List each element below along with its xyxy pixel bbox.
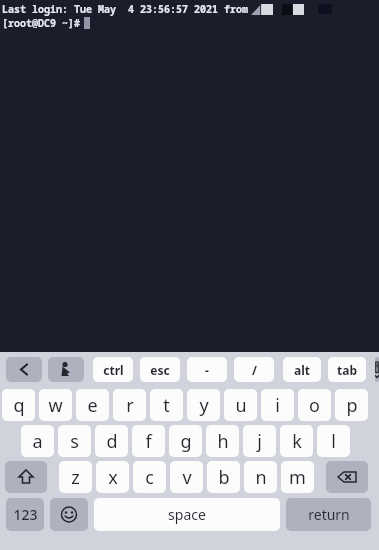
button[interactable]: q bbox=[2, 389, 35, 421]
staticText: / bbox=[252, 362, 257, 378]
staticText: m bbox=[289, 465, 306, 490]
button[interactable]: l bbox=[317, 425, 350, 457]
staticText: v bbox=[182, 465, 192, 490]
staticText: p bbox=[346, 393, 358, 418]
button[interactable]: Previous bbox=[6, 357, 42, 382]
button[interactable]: f bbox=[132, 425, 165, 457]
button[interactable]: - bbox=[187, 357, 227, 382]
staticText: [root@DC9 ~]# bbox=[2, 16, 80, 30]
button[interactable]: a bbox=[21, 425, 54, 457]
button[interactable]: v bbox=[170, 461, 203, 493]
staticText: f bbox=[145, 429, 152, 454]
button[interactable]: t bbox=[150, 389, 183, 421]
staticText: tab bbox=[337, 362, 357, 378]
staticText: - bbox=[205, 362, 209, 378]
button[interactable]: alt bbox=[283, 357, 321, 382]
button[interactable]: h bbox=[206, 425, 239, 457]
staticText: r bbox=[126, 393, 134, 418]
staticText: w bbox=[48, 393, 63, 418]
staticText: o bbox=[309, 393, 320, 418]
staticText: j bbox=[257, 429, 262, 454]
staticText: Last login: Tue May 4 23:56:57 2021 from bbox=[2, 2, 248, 16]
button[interactable]: z bbox=[59, 461, 92, 493]
staticText: y bbox=[199, 393, 209, 418]
staticText: alt bbox=[294, 362, 310, 378]
button[interactable]: j bbox=[243, 425, 276, 457]
staticText: g bbox=[180, 429, 192, 454]
button[interactable]: esc bbox=[140, 357, 180, 382]
staticText: a bbox=[32, 429, 43, 454]
button[interactable]: Emoji bbox=[50, 498, 88, 531]
staticText: e bbox=[87, 393, 98, 418]
button[interactable]: u bbox=[224, 389, 257, 421]
button[interactable]: x bbox=[96, 461, 129, 493]
button[interactable]: e bbox=[76, 389, 109, 421]
staticText: 123 bbox=[13, 505, 38, 524]
button[interactable]: k bbox=[280, 425, 313, 457]
button[interactable]: b bbox=[207, 461, 240, 493]
button[interactable]: g bbox=[169, 425, 202, 457]
staticText: space bbox=[168, 505, 206, 524]
staticText: q bbox=[13, 393, 25, 418]
staticText: h bbox=[217, 429, 229, 454]
staticText: n bbox=[255, 465, 267, 490]
button[interactable]: y bbox=[187, 389, 220, 421]
staticText: l bbox=[331, 429, 336, 454]
staticText: k bbox=[292, 429, 302, 454]
staticText: u bbox=[235, 393, 247, 418]
staticText: return bbox=[308, 505, 350, 524]
button[interactable]: ctrl bbox=[93, 357, 133, 382]
button[interactable]: p bbox=[335, 389, 368, 421]
staticText: c bbox=[145, 465, 154, 490]
staticText: x bbox=[108, 465, 118, 490]
button[interactable]: space bbox=[94, 498, 280, 531]
button[interactable]: Backspace bbox=[326, 461, 368, 493]
button[interactable]: return bbox=[286, 498, 371, 531]
staticText: z bbox=[71, 465, 80, 490]
button[interactable]: Pointer mode bbox=[48, 357, 84, 382]
staticText: t bbox=[163, 393, 170, 418]
button[interactable]: 123 bbox=[6, 498, 44, 531]
button[interactable]: d bbox=[95, 425, 128, 457]
button[interactable]: o bbox=[298, 389, 331, 421]
button[interactable]: Hide keyboard bbox=[375, 357, 379, 382]
button[interactable]: w bbox=[39, 389, 72, 421]
staticText: ctrl bbox=[103, 362, 124, 378]
button[interactable]: r bbox=[113, 389, 146, 421]
staticText: i bbox=[275, 393, 280, 418]
button[interactable]: Shift bbox=[5, 461, 47, 493]
button[interactable]: c bbox=[133, 461, 166, 493]
staticText: b bbox=[218, 465, 230, 490]
button[interactable]: tab bbox=[328, 357, 366, 382]
button[interactable]: m bbox=[281, 461, 314, 493]
button[interactable]: s bbox=[58, 425, 91, 457]
button[interactable]: n bbox=[244, 461, 277, 493]
button[interactable]: / bbox=[234, 357, 274, 382]
staticText: d bbox=[106, 429, 118, 454]
staticText: s bbox=[70, 429, 79, 454]
staticText: esc bbox=[150, 362, 170, 378]
button[interactable]: i bbox=[261, 389, 294, 421]
